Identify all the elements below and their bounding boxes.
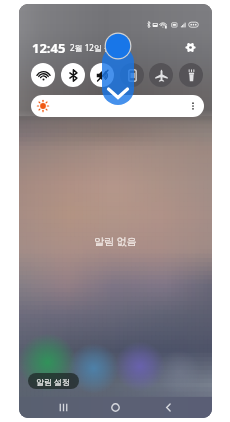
button[interactable]: Bluetooth [61, 63, 85, 87]
staticText: 2월 12일 월 [70, 42, 112, 53]
button[interactable]: Airplane mode [149, 63, 173, 87]
staticText: 알림 없음 [94, 234, 137, 248]
button[interactable]: Mute [90, 63, 114, 87]
button[interactable]: Wi-Fi [31, 63, 55, 87]
button[interactable]: Brightness [31, 95, 204, 117]
button[interactable]: Recents [52, 397, 74, 417]
staticText: 알림 설정 [36, 376, 71, 387]
button[interactable]: 알림 설정 [28, 373, 79, 389]
button[interactable]: Mobile data [120, 63, 144, 87]
button[interactable]: More brightness options [186, 99, 200, 113]
button[interactable]: Back [157, 397, 179, 417]
button[interactable]: Flashlight [179, 63, 203, 87]
staticText: 12:45 [32, 39, 66, 55]
button[interactable]: Settings [184, 41, 197, 54]
button[interactable]: Home [104, 397, 126, 417]
